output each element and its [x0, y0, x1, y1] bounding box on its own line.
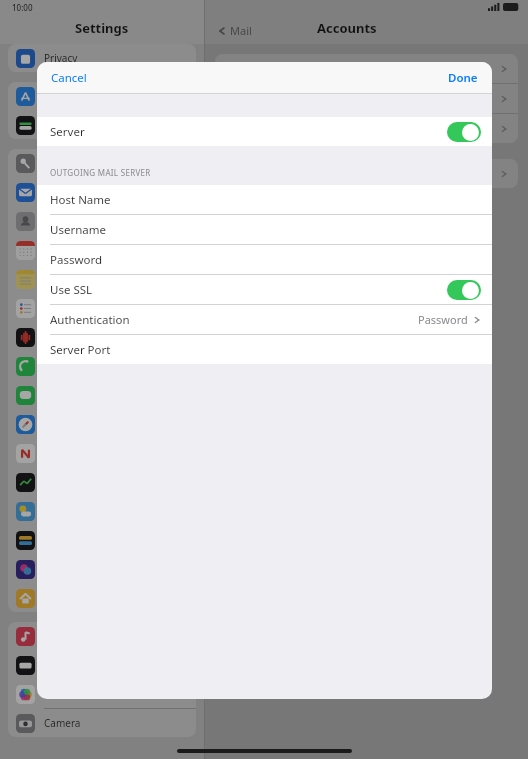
button[interactable]: Use SSL: [37, 275, 492, 304]
button[interactable]: Reminders: [8, 294, 196, 322]
staticText: Photos: [44, 687, 77, 701]
staticText: Authentication: [50, 312, 130, 328]
staticText: Mail: [230, 23, 252, 38]
button[interactable]: Calendar: [8, 236, 196, 264]
button[interactable]: Translate: [8, 526, 196, 554]
button[interactable]: Mail: [8, 178, 196, 206]
staticText: Done: [448, 70, 478, 86]
button[interactable]: [215, 159, 518, 188]
staticText: Privacy: [44, 51, 78, 65]
button[interactable]: Password: [37, 245, 492, 274]
staticText: Accounts: [317, 19, 377, 37]
staticText: Phone: [44, 359, 75, 373]
staticText: Server: [50, 124, 85, 140]
button[interactable]: Toggle on: [447, 280, 481, 300]
button[interactable]: News: [8, 439, 196, 467]
staticText: Password: [418, 312, 468, 327]
button[interactable]: Wallet: [8, 111, 196, 139]
staticText: Use SSL: [50, 282, 93, 298]
button[interactable]: Mail: [217, 23, 252, 38]
button[interactable]: Phone: [8, 352, 196, 380]
button[interactable]: Notes: [8, 265, 196, 293]
button[interactable]: Music: [8, 622, 196, 650]
staticText: Settings: [75, 19, 129, 37]
button[interactable]: Home: [8, 584, 196, 612]
staticText: Wallet: [44, 118, 74, 132]
staticText: Server Port: [50, 342, 111, 358]
staticText: Camera: [44, 716, 81, 730]
button[interactable]: App Store: [8, 82, 196, 110]
staticText: App Store: [44, 89, 91, 103]
button[interactable]: Username: [37, 215, 492, 244]
button[interactable]: Server: [37, 117, 492, 146]
button[interactable]: Passwords: [8, 149, 196, 177]
staticText: Notes: [44, 272, 72, 286]
staticText: Password: [50, 252, 103, 268]
staticText: Voice Memos: [44, 330, 107, 344]
button[interactable]: Privacy: [8, 44, 196, 72]
button[interactable]: Cancel: [37, 64, 101, 92]
button[interactable]: Messages: [8, 381, 196, 409]
button[interactable]: Voice Memos: [8, 323, 196, 351]
staticText: 10:00: [12, 2, 33, 13]
button[interactable]: [215, 114, 518, 143]
button[interactable]: Stocks: [8, 468, 196, 496]
button[interactable]: Toggle on: [447, 122, 481, 142]
staticText: Contacts: [44, 214, 85, 228]
button[interactable]: Contacts: [8, 207, 196, 235]
button[interactable]: Camera: [8, 709, 196, 737]
button[interactable]: Shortcuts: [8, 555, 196, 583]
button[interactable]: Done: [434, 64, 492, 92]
staticText: Mail: [44, 185, 64, 199]
staticText: Passwords: [44, 156, 95, 170]
staticText: Host Name: [50, 192, 111, 208]
button[interactable]: TV: [8, 651, 196, 679]
staticText: Calendar: [44, 243, 87, 257]
button[interactable]: [215, 84, 518, 113]
staticText: Reminders: [44, 301, 95, 315]
staticText: Username: [50, 222, 106, 238]
button[interactable]: Host Name: [37, 185, 492, 214]
button[interactable]: Safari: [8, 410, 196, 438]
button[interactable]: Weather: [8, 497, 196, 525]
staticText: OUTGOING MAIL SERVER: [50, 167, 151, 178]
button[interactable]: Photos: [8, 680, 196, 708]
button[interactable]: Authentication: [37, 305, 492, 334]
staticText: Cancel: [51, 70, 87, 86]
button[interactable]: Server Port: [37, 335, 492, 364]
button[interactable]: [215, 54, 518, 83]
